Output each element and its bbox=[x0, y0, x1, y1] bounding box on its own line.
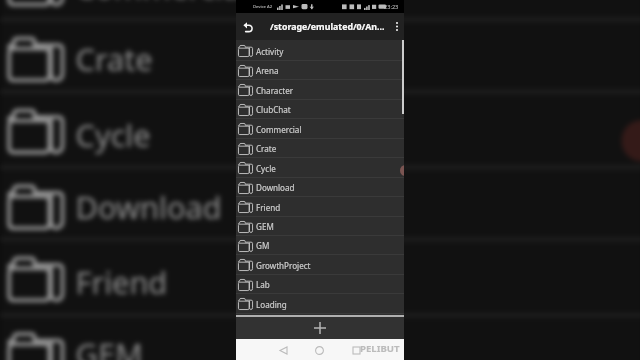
staticText: /storage/emulated/0/An… bbox=[270, 21, 385, 33]
staticText: Cycle bbox=[76, 112, 151, 154]
button[interactable]: Character bbox=[236, 80, 404, 100]
staticText: Friend bbox=[256, 202, 281, 213]
button[interactable]: Loading bbox=[236, 294, 404, 314]
staticText: GrowthProject bbox=[256, 260, 311, 271]
button[interactable]: Cycle bbox=[236, 158, 404, 178]
staticText: Lab bbox=[256, 279, 270, 290]
button[interactable]: Lab bbox=[236, 275, 404, 294]
button[interactable]: Cycle bbox=[0, 93, 640, 169]
button[interactable]: GM bbox=[236, 236, 404, 255]
staticText: GM bbox=[256, 240, 270, 251]
staticText: Commercial bbox=[256, 124, 302, 135]
button[interactable]: Back bbox=[274, 341, 292, 359]
button[interactable]: More options bbox=[390, 13, 404, 40]
button[interactable]: Download bbox=[236, 178, 404, 197]
button[interactable]: Activity bbox=[236, 41, 404, 61]
button[interactable]: Friend bbox=[0, 241, 640, 317]
button[interactable]: Crate bbox=[236, 139, 404, 158]
button[interactable]: Crate bbox=[0, 21, 640, 93]
staticText: Arena bbox=[256, 65, 279, 76]
staticText: Friend bbox=[76, 260, 170, 302]
staticText: Crate bbox=[256, 143, 277, 154]
button[interactable]: ClubChat bbox=[236, 100, 404, 119]
button[interactable]: Friend bbox=[236, 197, 404, 217]
staticText: Device A2 bbox=[253, 4, 273, 10]
button[interactable]: Home bbox=[310, 341, 328, 359]
button[interactable]: GrowthProject bbox=[236, 255, 404, 275]
staticText: 23:23 bbox=[384, 3, 399, 11]
button[interactable]: Download bbox=[0, 169, 640, 241]
staticText: GEM bbox=[256, 221, 274, 232]
staticText: Commercial bbox=[76, 0, 250, 6]
staticText: GEM bbox=[76, 332, 144, 360]
staticText: Download bbox=[76, 184, 223, 226]
staticText: Download bbox=[256, 182, 295, 193]
staticText: Activity bbox=[256, 46, 284, 57]
staticText: Crate bbox=[76, 37, 155, 78]
button[interactable]: GEM bbox=[0, 317, 640, 360]
button[interactable]: Commercial bbox=[0, 0, 640, 21]
button[interactable]: Arena bbox=[236, 61, 404, 80]
staticText: Character bbox=[256, 85, 294, 96]
staticText: Cycle bbox=[256, 163, 276, 174]
button[interactable]: Recent apps bbox=[347, 341, 365, 359]
staticText: PELIBUT bbox=[360, 342, 400, 355]
staticText: Loading bbox=[256, 299, 287, 310]
button[interactable]: Navigate up bbox=[236, 13, 260, 40]
button[interactable]: Commercial bbox=[236, 119, 404, 139]
button[interactable]: GEM bbox=[236, 217, 404, 236]
staticText: ClubChat bbox=[256, 104, 291, 115]
button[interactable]: Add bbox=[236, 317, 404, 339]
